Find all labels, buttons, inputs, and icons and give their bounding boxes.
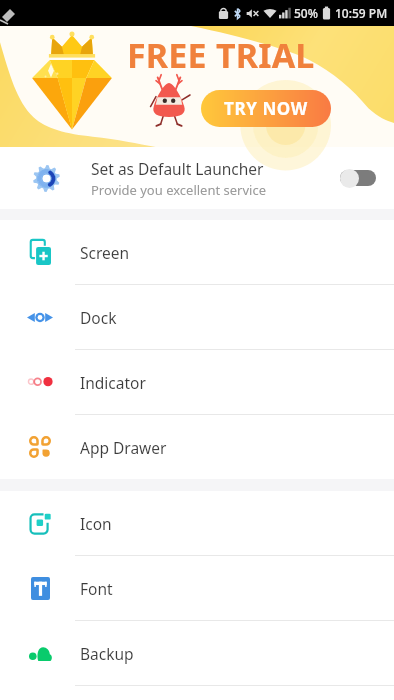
- staticText: Screen: [80, 242, 130, 263]
- staticText: 50%: [294, 5, 318, 21]
- button[interactable]: TRY NOW: [201, 90, 331, 127]
- button[interactable]: Icon: [0, 491, 394, 555]
- staticText: 10:59 PM: [335, 5, 388, 21]
- button[interactable]: Font: [0, 556, 394, 620]
- staticText: Provide you excellent service: [91, 181, 267, 199]
- button[interactable]: Backup: [0, 621, 394, 685]
- staticText: Dock: [80, 307, 117, 328]
- staticText: TRY NOW: [224, 97, 308, 120]
- staticText: Set as Default Launcher: [91, 158, 264, 179]
- button[interactable]: Indicator: [0, 350, 394, 414]
- staticText: Icon: [80, 513, 112, 534]
- button[interactable]: App Drawer: [0, 415, 394, 479]
- button[interactable]: Set as Default Launcher: [0, 147, 394, 209]
- staticText: App Drawer: [80, 437, 167, 458]
- button[interactable]: Toggle set as default launcher: [340, 166, 376, 190]
- staticText: Backup: [80, 643, 134, 664]
- button[interactable]: Screen: [0, 220, 394, 284]
- button[interactable]: Free trial banner: [0, 26, 394, 147]
- staticText: FREE TRIAL: [127, 32, 315, 78]
- staticText: Indicator: [80, 372, 146, 393]
- button[interactable]: Dock: [0, 285, 394, 349]
- staticText: Font: [80, 578, 113, 599]
